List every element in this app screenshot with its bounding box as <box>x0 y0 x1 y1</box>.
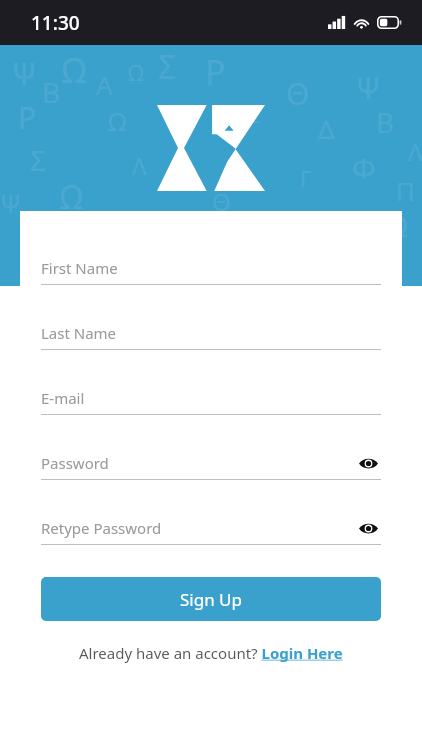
staticText: Ρ <box>76 251 92 286</box>
button[interactable]: First Name <box>41 251 381 285</box>
staticText: Ψ <box>356 67 381 108</box>
staticText: Σ <box>30 141 47 179</box>
staticText: Φ <box>352 149 376 187</box>
staticText: Ω <box>178 255 196 288</box>
button[interactable]: Show password <box>355 450 381 476</box>
staticText: Ω <box>108 103 127 138</box>
staticText: Ρ <box>205 49 226 95</box>
staticText: Λ <box>408 135 422 168</box>
staticText: Β <box>42 73 61 111</box>
staticText: Ω <box>386 205 408 246</box>
staticText: E-mail <box>41 388 85 408</box>
staticText: Sign Up <box>180 588 242 611</box>
staticText: Θ <box>286 73 310 114</box>
button[interactable]: Already have an account? Login Here <box>41 643 381 663</box>
staticText: Password <box>41 453 109 473</box>
staticText: Ξ <box>246 97 261 130</box>
staticText: Γ <box>300 163 311 193</box>
staticText: Ω <box>128 57 144 87</box>
staticText: First Name <box>41 258 118 278</box>
button[interactable]: Last Name <box>41 316 381 350</box>
staticText: Δ <box>318 111 335 146</box>
button[interactable]: Retype Password <box>41 511 381 545</box>
staticText: Ω <box>62 47 87 93</box>
button[interactable]: Password <box>41 446 381 480</box>
staticText: Ψ <box>12 53 37 94</box>
staticText: Retype Password <box>41 518 162 538</box>
staticText: Π <box>396 173 416 208</box>
staticText: Ρ <box>18 97 37 138</box>
button[interactable]: Sign Up <box>41 577 381 621</box>
staticText: Ω <box>60 175 83 219</box>
staticText: 11:30 <box>31 10 80 36</box>
staticText: Ψ <box>0 185 22 220</box>
staticText: Β <box>376 103 395 141</box>
staticText: Θ <box>212 185 231 218</box>
staticText: Already have an account? Login Here <box>79 643 343 663</box>
button[interactable]: Show password <box>355 515 381 541</box>
staticText: Α <box>96 67 113 102</box>
staticText: Last Name <box>41 323 117 343</box>
staticText: Λ <box>132 149 147 182</box>
button[interactable]: E-mail <box>41 381 381 415</box>
staticText: Σ <box>158 45 177 89</box>
